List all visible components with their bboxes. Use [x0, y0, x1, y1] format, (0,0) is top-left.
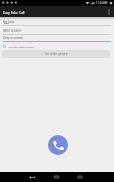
staticText: Use own caller picture: [8, 45, 34, 48]
staticText: Set caller picture: [45, 52, 68, 56]
button[interactable]: Set caller picture: [2, 50, 110, 58]
button[interactable]: Use own caller picture: [3, 44, 34, 48]
staticText: Big boss: [3, 20, 15, 24]
staticText: Easy Fake Call: [3, 10, 25, 14]
staticText: Delay in seconds: [3, 36, 23, 39]
staticText: 11:24 AM: [96, 1, 108, 5]
button[interactable]: Back: [26, 173, 38, 181]
button[interactable]: More options: [103, 6, 114, 17]
staticText: 0800 1234567: [3, 29, 22, 33]
button[interactable]: Recents: [74, 173, 86, 181]
button[interactable]: Call: [48, 135, 68, 155]
button[interactable]: Home: [50, 173, 62, 181]
